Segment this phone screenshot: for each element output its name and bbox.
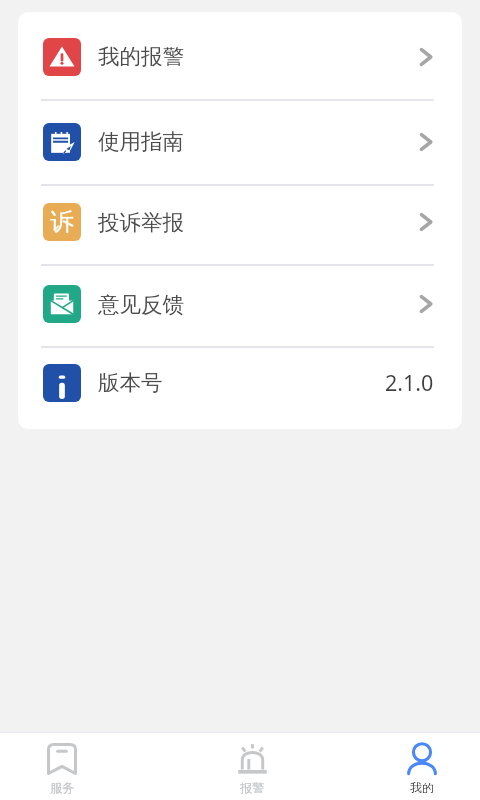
button[interactable]: 版本号	[18, 348, 462, 429]
button[interactable]: 意见反馈	[18, 266, 462, 346]
staticText: 2.1.0	[385, 368, 434, 397]
other: 报警	[237, 743, 268, 775]
staticText: 使用指南	[98, 128, 184, 155]
staticText: 意见反馈	[98, 291, 184, 318]
button[interactable]: 使用指南	[18, 101, 462, 184]
button[interactable]: 诉	[18, 186, 462, 264]
staticText: 报警	[240, 780, 264, 795]
staticText: 版本号	[98, 369, 163, 396]
staticText: 我的	[410, 780, 434, 795]
staticText: 服务	[50, 780, 74, 795]
staticText: 投诉举报	[98, 209, 184, 236]
staticText: 我的报警	[98, 43, 184, 70]
button[interactable]: 报警	[202, 733, 302, 800]
other: 我的	[407, 743, 437, 775]
staticText: 诉	[50, 207, 74, 237]
button[interactable]: 服务	[12, 733, 112, 800]
button[interactable]: 我的报警	[18, 12, 462, 99]
other: 服务	[47, 743, 77, 775]
button[interactable]: 我的	[372, 733, 472, 800]
